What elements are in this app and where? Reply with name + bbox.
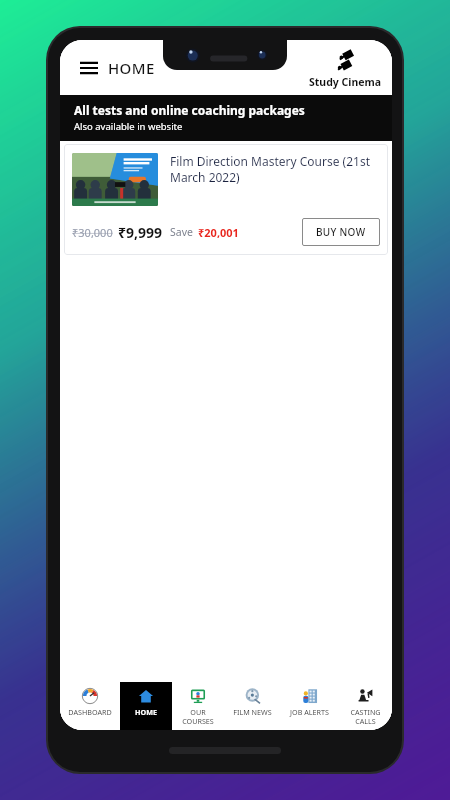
staticText: Save — [170, 225, 193, 239]
staticText: All tests and online coaching packages — [74, 102, 305, 118]
button[interactable]: FILM NEWS — [224, 682, 281, 730]
staticText: HOME — [108, 58, 155, 78]
staticText: HOME — [135, 707, 157, 717]
staticText: ₹9,999 — [118, 223, 163, 242]
other: Study Cinema logo — [331, 47, 361, 75]
staticText: ₹30,000 — [72, 225, 113, 240]
staticText: BUY NOW — [316, 225, 366, 239]
button[interactable]: Menu — [76, 54, 159, 82]
staticText: Also available in website — [74, 120, 183, 133]
staticText: CASTING CALLS — [350, 707, 381, 726]
staticText: Film Direction Mastery Course (21st Marc… — [170, 153, 380, 185]
button[interactable]: BUY NOW — [302, 218, 380, 246]
button[interactable]: CASTING CALLS — [338, 682, 392, 730]
button[interactable]: JOB ALERTS — [281, 682, 338, 730]
staticText: OUR COURSES — [182, 707, 214, 726]
button[interactable]: OUR COURSES — [172, 682, 224, 730]
other: Menu — [80, 59, 98, 77]
staticText: DASHBOARD — [68, 707, 112, 717]
staticText: Study Cinema — [309, 75, 382, 89]
button[interactable]: Film Direction Mastery Course (21st Marc… — [64, 144, 388, 255]
button[interactable]: HOME — [120, 682, 172, 730]
button[interactable]: Study Cinema logo — [309, 47, 382, 89]
staticText: FILM NEWS — [233, 707, 272, 717]
staticText: JOB ALERTS — [290, 707, 329, 717]
button[interactable]: DASHBOARD — [60, 682, 120, 730]
staticText: ₹20,001 — [198, 225, 239, 240]
